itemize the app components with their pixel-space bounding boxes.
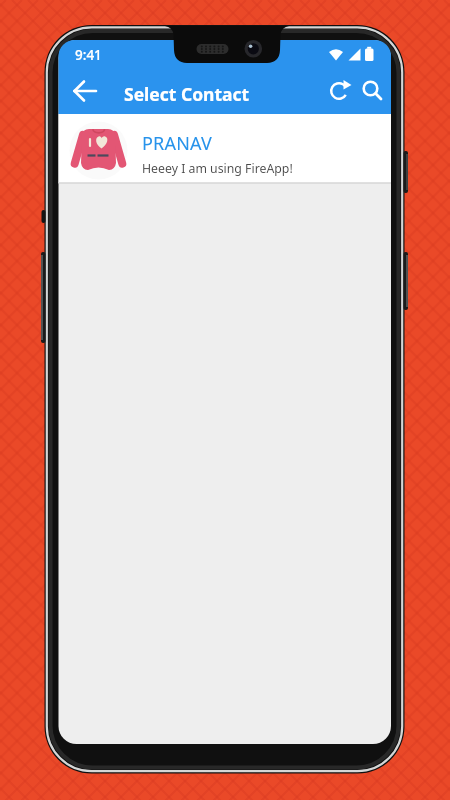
staticText: 9:41 <box>75 46 102 64</box>
button[interactable] <box>70 76 100 106</box>
button[interactable] <box>57 114 391 183</box>
button[interactable] <box>324 76 354 106</box>
staticText: Select Contact <box>124 82 250 106</box>
staticText: Heeey I am using FireApp! <box>142 160 293 177</box>
button[interactable] <box>357 76 387 106</box>
staticText: PRANAV <box>142 131 213 156</box>
